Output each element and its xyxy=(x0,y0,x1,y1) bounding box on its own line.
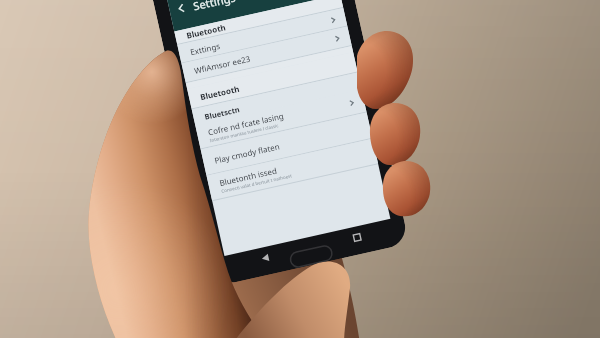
staticText: Bluetooth xyxy=(199,83,240,102)
button[interactable]: Bluetooth xyxy=(174,0,343,44)
button[interactable]: Bluetonth issed xyxy=(207,139,378,200)
staticText: Bluetsctn xyxy=(204,104,241,122)
button[interactable]: Cofre nd fcate lasing xyxy=(195,89,366,148)
staticText: Cofre nd fcate lasing xyxy=(207,110,285,137)
button[interactable]: Navigate up xyxy=(163,0,340,31)
staticText: Settings xyxy=(192,0,237,13)
staticText: Bluetonth issed xyxy=(218,164,278,188)
staticText: Exttings xyxy=(189,40,222,57)
staticText: Play cmody flaten xyxy=(213,140,281,166)
staticText: Interston mantau tuslere l classic xyxy=(209,122,279,143)
staticText: WfiAmsor ee23 xyxy=(193,52,252,76)
staticText: Connecti valat d bertuit t nathoest xyxy=(221,172,293,194)
button[interactable]: Navigate up xyxy=(167,0,196,24)
button[interactable]: Bluetsctn xyxy=(192,72,361,126)
button[interactable]: WfiAmsor ee23 xyxy=(181,26,352,82)
button[interactable]: Play cmody flaten xyxy=(201,112,372,175)
button[interactable]: Exttings xyxy=(177,8,347,63)
staticText: Bluetooth xyxy=(185,21,227,41)
button[interactable]: Bluetooth xyxy=(187,52,357,108)
